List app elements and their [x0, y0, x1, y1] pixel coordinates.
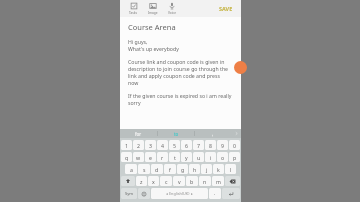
button[interactable]: f [164, 164, 176, 174]
staticText: ◂ [166, 191, 169, 196]
button[interactable]: Emoji [138, 188, 150, 199]
button[interactable]: o [217, 152, 228, 162]
button[interactable]: 9 [217, 140, 228, 150]
button[interactable]: to [158, 129, 194, 138]
button[interactable]: m [212, 176, 224, 186]
staticText: Course Arena [128, 22, 176, 32]
button[interactable]: b [186, 176, 198, 186]
staticText: 8 [209, 142, 212, 149]
button[interactable]: e [145, 152, 156, 162]
button[interactable]: x [148, 176, 159, 186]
staticText: r [161, 154, 164, 161]
button[interactable]: 1 [121, 140, 132, 150]
button[interactable]: 5 [169, 140, 180, 150]
button[interactable]: z [136, 176, 147, 186]
staticText: SAVE [219, 5, 233, 12]
button[interactable]: 3 [145, 140, 156, 150]
staticText: Sym [125, 191, 133, 196]
staticText: 3 [149, 142, 152, 149]
button[interactable]: p [229, 152, 240, 162]
staticText: 1 [125, 142, 128, 149]
button[interactable]: w [133, 152, 144, 162]
button[interactable]: a [125, 164, 137, 174]
staticText: d [155, 166, 159, 173]
staticText: y [185, 154, 188, 161]
staticText: English(UK) [169, 191, 190, 196]
button[interactable]: h [189, 164, 200, 174]
staticText: 5 [173, 142, 176, 149]
staticText: sorry [128, 99, 141, 106]
staticText: Course link and coupon code is given in [128, 58, 225, 65]
staticText: What's up everybody [128, 45, 179, 52]
staticText: b [190, 178, 194, 185]
button[interactable]: 4 [157, 140, 168, 150]
button[interactable]: j [201, 164, 212, 174]
button[interactable]: Tasks [127, 2, 140, 15]
staticText: ▸ [190, 191, 193, 196]
staticText: Voice [168, 11, 176, 15]
staticText: e [149, 154, 152, 161]
staticText: Image [148, 11, 158, 15]
staticText: i [210, 154, 212, 161]
staticText: u [197, 154, 201, 161]
staticText: 4 [161, 142, 164, 149]
button[interactable]: Image [146, 2, 160, 15]
button[interactable]: 6 [181, 140, 192, 150]
button[interactable]: l [225, 164, 236, 174]
staticText: 7 [197, 142, 200, 149]
button[interactable]: u [193, 152, 204, 162]
button[interactable]: Sym [121, 188, 137, 199]
staticText: description to join course go through th… [128, 65, 229, 72]
staticText: 6 [185, 142, 188, 149]
button[interactable]: i [205, 152, 216, 162]
staticText: . [214, 190, 216, 197]
button[interactable]: r [157, 152, 168, 162]
button[interactable]: 0 [229, 140, 240, 150]
staticText: l [230, 166, 232, 173]
staticText: s [143, 166, 146, 173]
staticText: j [206, 166, 208, 173]
button[interactable]: SAVE [217, 3, 235, 14]
button[interactable]: v [173, 176, 185, 186]
staticText: Tasks [129, 11, 138, 15]
button[interactable]: d [151, 164, 163, 174]
button[interactable]: k [213, 164, 224, 174]
button[interactable]: . [209, 188, 221, 199]
button[interactable]: y [181, 152, 192, 162]
staticText: z [140, 178, 143, 185]
button[interactable]: 2 [133, 140, 144, 150]
button[interactable]: s [138, 164, 150, 174]
button[interactable]: More suggestions [231, 129, 241, 138]
button[interactable]: Shift [121, 176, 135, 186]
staticText: v [178, 178, 181, 185]
button[interactable]: t [169, 152, 180, 162]
staticText: 0 [233, 142, 236, 149]
button[interactable]: g [177, 164, 188, 174]
button[interactable]: Add [234, 61, 247, 74]
staticText: q [125, 154, 129, 161]
staticText: m [216, 178, 221, 185]
button[interactable]: 7 [193, 140, 204, 150]
staticText: p [233, 154, 237, 161]
button[interactable]: c [160, 176, 172, 186]
staticText: Hi guys, [128, 38, 148, 45]
button[interactable]: 8 [205, 140, 216, 150]
button[interactable]: Backspace [225, 176, 240, 186]
staticText: , [212, 131, 214, 137]
staticText: a [130, 166, 133, 173]
button[interactable]: q [121, 152, 132, 162]
button[interactable]: Space [151, 188, 208, 199]
staticText: link and apply coupon code and press enr… [128, 72, 233, 79]
staticText: f [169, 166, 171, 173]
button[interactable]: for [120, 129, 157, 138]
button[interactable]: Voice [166, 2, 178, 15]
staticText: to [174, 131, 179, 137]
button[interactable]: n [199, 176, 211, 186]
button[interactable]: Enter [222, 188, 240, 199]
staticText: g [181, 166, 185, 173]
staticText: now [128, 79, 139, 86]
staticText: t [174, 154, 176, 161]
staticText: 9 [221, 142, 224, 149]
staticText: o [221, 154, 225, 161]
